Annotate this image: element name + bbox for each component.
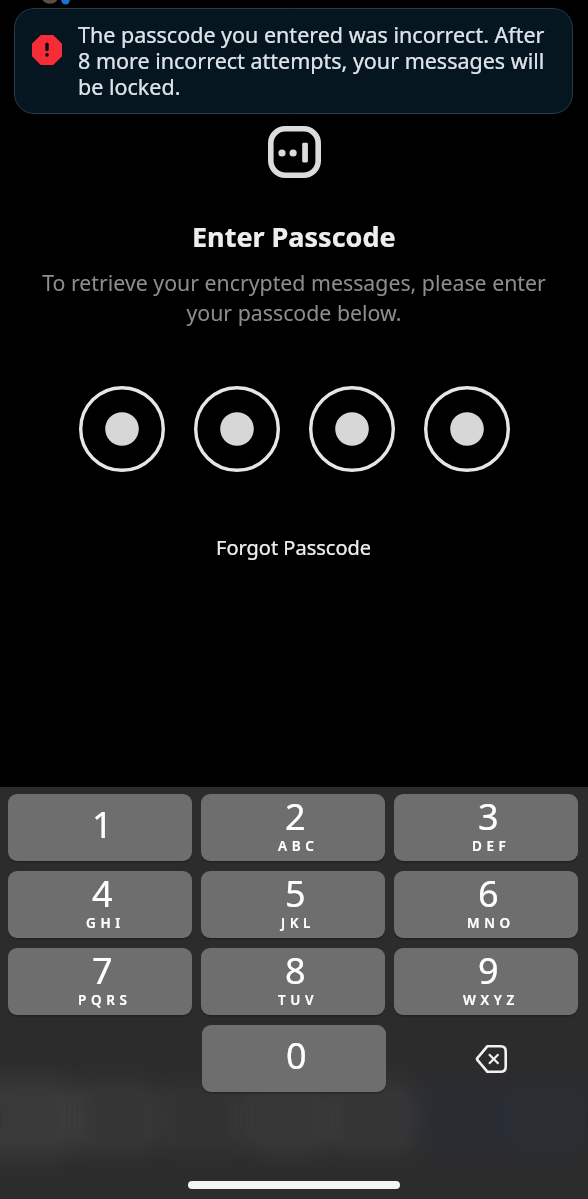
button[interactable]: 2 — [201, 794, 385, 861]
staticText: DEF — [472, 837, 511, 855]
staticText: 5 — [285, 871, 306, 918]
staticText: 6 — [478, 871, 499, 918]
button[interactable]: Delete — [399, 1025, 583, 1092]
button[interactable]: The passcode you entered was incorrect. … — [14, 8, 573, 114]
staticText: TUV — [278, 991, 319, 1009]
staticText: 3 — [478, 794, 499, 841]
button[interactable]: 9 — [394, 948, 578, 1015]
staticText: 2 — [285, 794, 306, 841]
staticText: MNO — [467, 914, 515, 932]
button[interactable]: 7 — [8, 948, 192, 1015]
button[interactable]: 5 — [201, 871, 385, 938]
staticText: 9 — [478, 948, 499, 995]
button[interactable]: 6 — [394, 871, 578, 938]
staticText: 4 — [92, 871, 113, 918]
button[interactable]: 4 — [8, 871, 192, 938]
staticText: PQRS — [78, 991, 132, 1009]
staticText: 8 — [285, 948, 306, 995]
staticText: GHI — [86, 914, 125, 932]
staticText: Enter Passcode — [192, 218, 396, 255]
staticText: To retrieve your encrypted messages, ple… — [9, 268, 579, 327]
staticText: WXYZ — [463, 991, 519, 1009]
staticText: 1 — [92, 800, 113, 849]
button[interactable]: 8 — [201, 948, 385, 1015]
staticText: ABC — [278, 837, 319, 855]
button[interactable]: 3 — [394, 794, 578, 861]
staticText: Forgot Passcode — [216, 534, 372, 561]
button[interactable]: 0 — [202, 1025, 386, 1092]
staticText: The passcode you entered was incorrect. … — [78, 20, 568, 102]
button[interactable]: Forgot Passcode — [208, 526, 380, 569]
staticText: JKL — [281, 914, 316, 932]
button[interactable]: 1 — [8, 794, 192, 861]
staticText: 0 — [286, 1031, 307, 1080]
staticText: 7 — [92, 948, 113, 995]
